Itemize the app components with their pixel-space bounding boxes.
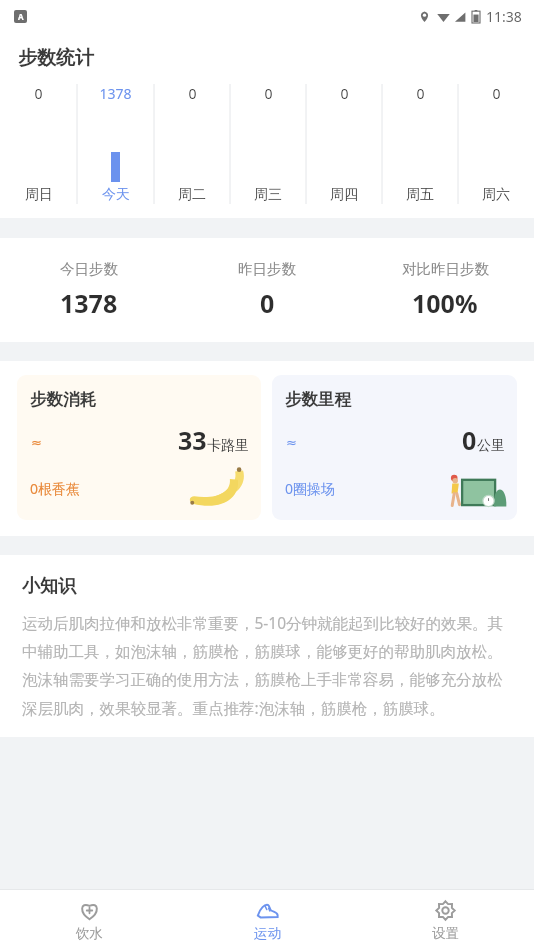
staticText: 0 <box>188 84 197 103</box>
staticText: ≈ <box>31 435 42 450</box>
staticText: 今天 <box>102 186 130 204</box>
staticText: 卡路里 <box>207 437 249 455</box>
staticText: 今日步数 <box>60 260 118 278</box>
staticText: 对比昨日步数 <box>402 260 489 278</box>
staticText: 33 <box>178 423 207 457</box>
staticText: 步数里程 <box>285 389 351 410</box>
staticText: 11:38 <box>486 7 522 26</box>
staticText: 0 <box>264 84 273 103</box>
staticText: 运动 <box>254 925 281 942</box>
staticText: 周日 <box>25 186 53 204</box>
button[interactable]: 饮水 <box>0 890 178 950</box>
staticText: 1378 <box>99 84 132 103</box>
staticText: 周三 <box>254 186 282 204</box>
staticText: 0 <box>34 84 43 103</box>
staticText: 周四 <box>330 186 358 204</box>
staticText: 步数统计 <box>18 46 94 70</box>
staticText: 0 <box>416 84 425 103</box>
button[interactable]: 设置 <box>356 890 534 950</box>
staticText: 小知识 <box>22 575 76 598</box>
staticText: 0 <box>492 84 501 103</box>
staticText: 饮水 <box>76 925 103 942</box>
staticText: 0 <box>462 423 477 457</box>
staticText: 昨日步数 <box>238 260 296 278</box>
button[interactable]: 步数里程 <box>272 375 517 520</box>
button[interactable]: 运动 <box>178 890 356 950</box>
staticText: 运动后肌肉拉伸和放松非常重要，5-10分钟就能起到比较好的效果。其中辅助工具，如… <box>22 612 512 719</box>
staticText: 1378 <box>60 286 118 320</box>
staticText: 0圈操场 <box>285 479 336 498</box>
staticText: 公里 <box>477 437 505 455</box>
staticText: 0 <box>260 286 275 320</box>
staticText: 步数消耗 <box>30 389 96 410</box>
staticText: 0根香蕉 <box>30 479 81 498</box>
staticText: 周六 <box>482 186 510 204</box>
staticText: 周五 <box>406 186 434 204</box>
staticText: 0 <box>340 84 349 103</box>
staticText: 100% <box>412 286 478 320</box>
button[interactable]: 步数消耗 <box>17 375 261 520</box>
staticText: A <box>18 11 24 22</box>
staticText: 周二 <box>178 186 206 204</box>
staticText: ≈ <box>286 435 297 450</box>
staticText: 设置 <box>432 925 459 942</box>
